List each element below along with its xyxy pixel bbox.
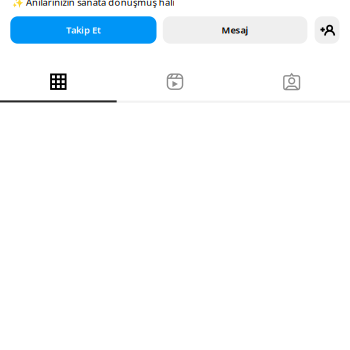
button[interactable]: Tagged posts	[233, 61, 350, 103]
button[interactable]: Posts grid	[0, 61, 117, 103]
staticText: Takip Et	[66, 24, 101, 36]
button[interactable]: Reels	[117, 61, 233, 103]
staticText: Mesaj	[222, 24, 249, 36]
staticText: ✨ Anılarınızın sanata dönüşmüş hali	[12, 0, 174, 8]
button[interactable]: Discover people	[315, 16, 339, 44]
button[interactable]: Takip Et	[10, 16, 156, 44]
button[interactable]: Mesaj	[163, 16, 307, 44]
